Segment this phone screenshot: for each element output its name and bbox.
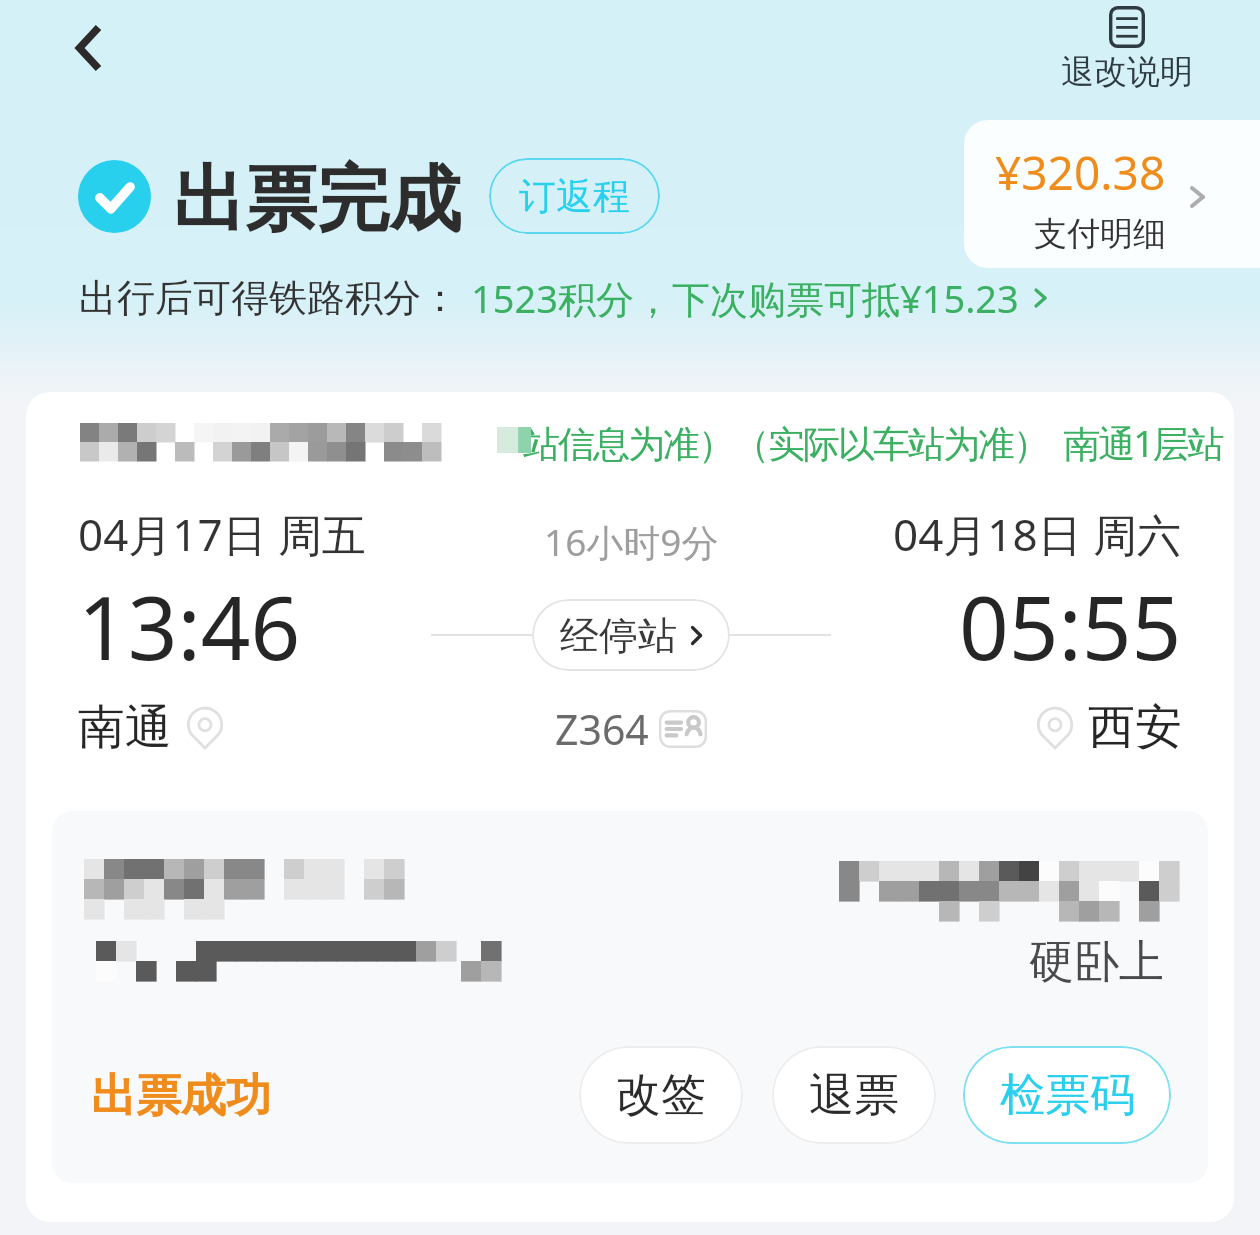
staticText: 04月17日 周五 xyxy=(78,504,367,564)
staticText: 西安 xyxy=(1088,698,1182,757)
staticText: 16小时9分 xyxy=(544,516,719,567)
button[interactable]: 订返程 xyxy=(489,158,660,234)
staticText: 订返程 xyxy=(519,173,630,220)
staticText: 南通 xyxy=(78,698,172,757)
button[interactable]: ¥320.38 xyxy=(964,120,1260,268)
button[interactable]: 改签 xyxy=(579,1046,743,1144)
button[interactable]: 退改说明 xyxy=(1059,6,1195,93)
button[interactable]: 退票 xyxy=(772,1046,936,1144)
staticText: 退票 xyxy=(809,1067,899,1124)
staticText: 退改说明 xyxy=(1061,51,1193,93)
staticText: 经停站 xyxy=(560,611,677,660)
button[interactable]: 检票码 xyxy=(963,1046,1171,1144)
staticText: 05:55 xyxy=(959,567,1182,685)
staticText: 支付明细 xyxy=(1034,213,1166,255)
staticText: 出行后可得铁路积分： xyxy=(79,274,459,322)
staticText: 检票码 xyxy=(1000,1067,1135,1124)
staticText: 站信息为准）（实际以车站为准） 南通1层站 xyxy=(523,417,1223,468)
staticText: 13:46 xyxy=(78,567,301,685)
staticText: 出票完成 xyxy=(173,155,461,246)
staticText: 改签 xyxy=(616,1067,706,1124)
staticText: Z364 xyxy=(555,701,649,757)
staticText: 04月18日 周六 xyxy=(893,504,1182,564)
staticText: ¥320.38 xyxy=(995,141,1166,204)
staticText: 出票成功 xyxy=(91,1068,271,1125)
staticText: 1523积分，下次购票可抵¥15.23 xyxy=(471,272,1019,324)
staticText: 硬卧上 xyxy=(1029,934,1164,991)
button[interactable]: 经停站 xyxy=(532,599,730,671)
button[interactable]: 出行后可得铁路积分： xyxy=(79,272,1046,324)
button[interactable]: Back xyxy=(49,8,129,88)
